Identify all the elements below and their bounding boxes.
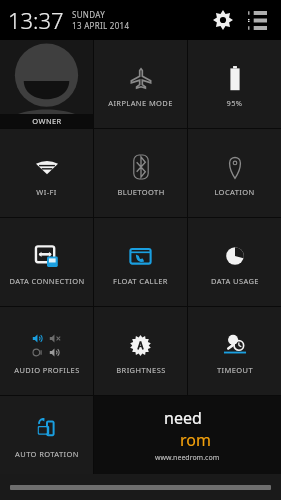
button[interactable]: WI-FI bbox=[0, 129, 93, 217]
button[interactable]: AUTO ROTATION bbox=[0, 396, 93, 474]
button[interactable]: 95% bbox=[188, 40, 281, 128]
staticText: LOCATION bbox=[214, 187, 255, 197]
button[interactable]: DATA CONNECTION bbox=[0, 218, 93, 306]
staticText: 13 APRIL 2014 bbox=[72, 20, 130, 31]
staticText: AIRPLANE MODE bbox=[108, 98, 173, 108]
button[interactable]: AUDIO PROFILES bbox=[0, 307, 93, 395]
button[interactable]: LOCATION bbox=[188, 129, 281, 217]
button[interactable]: BRIGHTNESS bbox=[94, 307, 187, 395]
staticText: OWNER bbox=[32, 116, 62, 126]
staticText: 13:37 bbox=[8, 5, 64, 35]
staticText: WI-FI bbox=[36, 187, 57, 197]
button[interactable]: BLUETOOTH bbox=[94, 129, 187, 217]
button[interactable]: DATA USAGE bbox=[188, 218, 281, 306]
button[interactable]: AIRPLANE MODE bbox=[94, 40, 187, 128]
button[interactable]: Settings bbox=[207, 4, 239, 36]
staticText: DATA USAGE bbox=[211, 276, 259, 286]
staticText: AUDIO PROFILES bbox=[14, 365, 80, 375]
staticText: BLUETOOTH bbox=[117, 187, 165, 197]
button[interactable]: Toggle list view bbox=[241, 4, 273, 36]
staticText: AUTO ROTATION bbox=[15, 449, 79, 459]
staticText: DATA CONNECTION bbox=[9, 276, 85, 286]
button[interactable]: FLOAT CALLER bbox=[94, 218, 187, 306]
staticText: 95% bbox=[226, 98, 243, 108]
button[interactable]: TIMEOUT bbox=[188, 307, 281, 395]
staticText: BRIGHTNESS bbox=[116, 365, 166, 375]
staticText: need bbox=[164, 407, 202, 429]
staticText: FLOAT CALLER bbox=[113, 276, 168, 286]
staticText: SUNDAY bbox=[72, 9, 105, 20]
staticText: TIMEOUT bbox=[217, 365, 253, 375]
button[interactable]: OWNER bbox=[0, 40, 93, 128]
staticText: rom bbox=[180, 429, 211, 451]
staticText: www.needrom.com bbox=[155, 453, 220, 463]
